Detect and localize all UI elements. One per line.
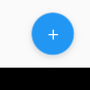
button[interactable]: Navigation bar	[0, 67, 90, 90]
button[interactable]: Add	[32, 13, 74, 55]
